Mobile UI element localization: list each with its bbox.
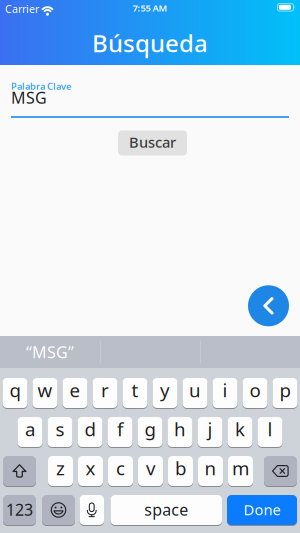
button[interactable]: t (122, 378, 147, 408)
button[interactable]: n (198, 456, 223, 486)
button[interactable]: o (242, 378, 267, 408)
button[interactable]: Emoji (42, 495, 75, 525)
staticText: p (279, 378, 290, 402)
staticText: e (69, 378, 80, 402)
button[interactable]: u (182, 378, 207, 408)
button[interactable]: c (108, 456, 133, 486)
staticText: Buscar (129, 132, 176, 152)
button[interactable]: j (197, 417, 222, 447)
staticText: g (144, 417, 155, 441)
staticText: r (101, 378, 109, 402)
staticText: k (235, 417, 245, 441)
button[interactable]: space (110, 495, 222, 525)
staticText: l (267, 417, 272, 441)
button[interactable]: Buscar (118, 130, 187, 155)
button[interactable]: v (138, 456, 163, 486)
button[interactable]: Shift (3, 456, 36, 486)
button[interactable]: Delete (264, 456, 297, 486)
staticText: Done (243, 500, 280, 519)
button[interactable]: Back (248, 285, 289, 326)
staticText: Palabra Clave (11, 80, 71, 92)
staticText: MSG (11, 87, 47, 108)
staticText: s (55, 417, 64, 441)
staticText: f (117, 417, 123, 441)
button[interactable]: Done (227, 495, 297, 525)
button[interactable]: a (17, 417, 42, 447)
staticText: t (131, 378, 138, 402)
staticText: a (25, 417, 35, 441)
staticText: n (204, 456, 216, 480)
button[interactable]: m (228, 456, 253, 486)
button[interactable]: y (152, 378, 177, 408)
button[interactable]: Palabra Clave (0, 80, 300, 118)
button[interactable]: p (272, 378, 297, 408)
button[interactable]: l (257, 417, 282, 447)
button[interactable]: f (107, 417, 132, 447)
staticText: v (146, 456, 155, 480)
staticText: c (116, 456, 125, 480)
staticText: b (175, 456, 186, 480)
staticText: Búsqueda (92, 27, 208, 59)
button[interactable]: “MSG” (0, 336, 100, 368)
button[interactable]: k (227, 417, 252, 447)
staticText: “MSG” (26, 341, 74, 363)
button[interactable]: e (62, 378, 87, 408)
button[interactable]: s (47, 417, 72, 447)
button[interactable]: i (212, 378, 237, 408)
button[interactable]: h (167, 417, 192, 447)
staticText: d (84, 417, 95, 441)
button[interactable]: g (137, 417, 162, 447)
staticText: u (189, 378, 201, 402)
staticText: z (56, 456, 65, 480)
staticText: i (222, 378, 227, 402)
button[interactable]: w (32, 378, 57, 408)
staticText: y (160, 378, 170, 402)
button[interactable]: z (48, 456, 73, 486)
button[interactable]: b (168, 456, 193, 486)
button[interactable]: r (92, 378, 117, 408)
staticText: q (9, 378, 20, 402)
button[interactable]: x (78, 456, 103, 486)
staticText: Carrier (5, 2, 39, 16)
staticText: h (174, 417, 186, 441)
staticText: x (85, 456, 95, 480)
button[interactable]: d (77, 417, 102, 447)
staticText: space (144, 499, 188, 520)
button[interactable]: 123 (3, 495, 36, 525)
staticText: m (232, 456, 249, 480)
staticText: j (207, 417, 212, 441)
staticText: w (37, 378, 52, 402)
staticText: o (249, 378, 260, 402)
button[interactable]: q (2, 378, 27, 408)
staticText: 7:55 AM (132, 2, 167, 14)
button[interactable]: Dictation (79, 495, 104, 525)
staticText: 123 (6, 499, 33, 520)
